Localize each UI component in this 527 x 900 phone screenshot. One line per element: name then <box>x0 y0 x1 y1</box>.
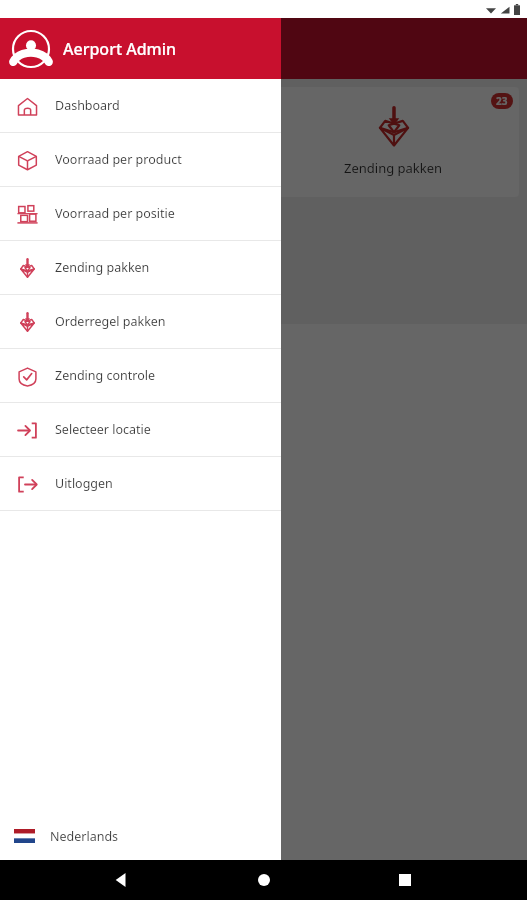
staticText: Dashboard <box>55 97 120 114</box>
button[interactable]: Zending controle <box>0 349 281 402</box>
staticText: 23 <box>496 94 508 108</box>
staticText: Orderregel pakken <box>55 313 166 330</box>
button[interactable]: Zending controle <box>8 206 259 316</box>
button[interactable]: Zending pakken <box>0 241 281 294</box>
staticText: Voorraad per product <box>55 151 182 168</box>
button[interactable]: Uitloggen <box>0 457 281 510</box>
staticText: Voorraad per positie <box>71 159 196 177</box>
staticText: Warehouse 3 <box>72 36 191 62</box>
staticText: Nederlands <box>50 828 119 845</box>
button[interactable]: Dashboard <box>0 79 281 132</box>
button[interactable]: Zending pakken <box>268 87 519 197</box>
staticText: Uitloggen <box>55 475 113 492</box>
button[interactable]: Back <box>103 861 141 899</box>
staticText: Voorraad per positie <box>55 205 175 222</box>
button[interactable]: Orderregel pakken <box>0 295 281 348</box>
button[interactable]: Home <box>245 861 283 899</box>
button[interactable]: Voorraad per positie <box>8 87 259 197</box>
button[interactable]: Aerport Admin <box>0 18 281 79</box>
staticText: Aerport Admin <box>63 38 177 60</box>
button[interactable]: Selecteer locatie <box>0 403 281 456</box>
staticText: Zending controle <box>55 367 156 384</box>
button[interactable]: Recent apps <box>386 861 424 899</box>
staticText: Zending controle <box>81 278 186 296</box>
button[interactable]: Nederlands <box>0 812 281 860</box>
button[interactable]: Voorraad per positie <box>0 187 281 240</box>
staticText: Zending pakken <box>344 159 443 177</box>
button[interactable]: Voorraad per product <box>0 133 281 186</box>
staticText: Selecteer locatie <box>55 421 151 438</box>
staticText: Zending pakken <box>55 259 150 276</box>
